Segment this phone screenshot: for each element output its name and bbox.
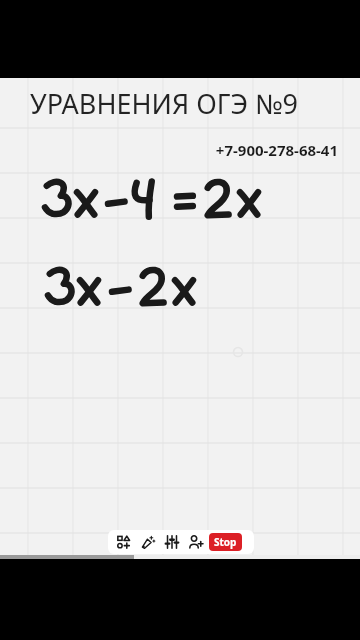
button[interactable]: Stop (209, 533, 242, 551)
button[interactable]: Add person (186, 531, 206, 553)
staticText: УРАВНЕНИЯ ОГЭ №9 (30, 85, 342, 122)
staticText: +7-900-278-68-41 (0, 140, 338, 160)
staticText: Stop (214, 535, 237, 549)
button[interactable]: Pen tool (138, 531, 158, 553)
button[interactable]: Settings (162, 531, 182, 553)
button[interactable]: Add shape (114, 531, 134, 553)
